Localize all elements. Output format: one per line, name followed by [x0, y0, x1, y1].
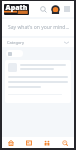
staticText: Category — [7, 40, 25, 45]
staticText: Say what's on your mind... — [8, 24, 70, 31]
button[interactable] — [6, 50, 23, 57]
button[interactable]: Menu — [62, 4, 72, 14]
button[interactable]: Apathy — [4, 4, 29, 15]
button[interactable]: Category — [2, 38, 74, 47]
button[interactable]: Groups — [38, 137, 56, 148]
button[interactable]: Home — [2, 137, 20, 148]
button[interactable]: Feed — [20, 137, 38, 148]
button[interactable] — [5, 60, 71, 103]
button[interactable]: Notifications — [56, 137, 74, 148]
button[interactable]: Search — [38, 4, 48, 14]
staticText: Apathy — [4, 4, 29, 14]
button[interactable]: Profile — [50, 4, 60, 14]
button[interactable]: Say what's on your mind... — [2, 19, 74, 36]
